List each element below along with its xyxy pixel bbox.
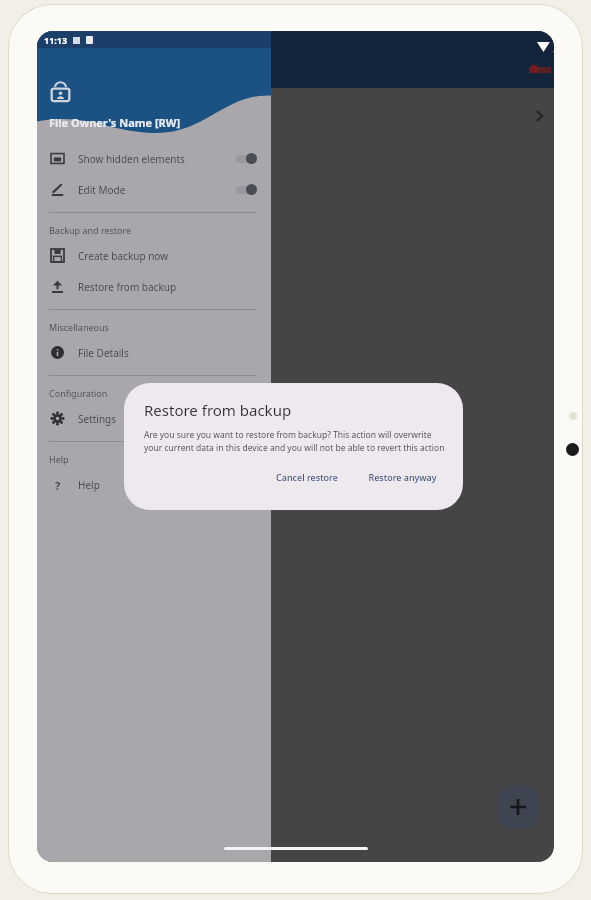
staticText: 11:13 xyxy=(44,34,68,46)
staticText: Help xyxy=(49,453,69,465)
staticText: Backup and restore xyxy=(49,224,132,236)
button[interactable]: Create backup now xyxy=(37,240,271,271)
button[interactable]: Add xyxy=(497,786,539,828)
button[interactable]: Restore anyway xyxy=(360,467,445,487)
other: Expand xyxy=(533,109,547,123)
staticText: Create backup now xyxy=(78,249,169,263)
staticText: Show hidden elements xyxy=(78,152,236,166)
staticText: Help xyxy=(78,478,100,492)
staticText: Restore from backup xyxy=(144,400,292,420)
staticText: Restore from backup xyxy=(78,280,177,294)
staticText: Settings xyxy=(78,412,117,426)
button[interactable]: Cancel restore xyxy=(268,467,346,487)
staticText: ? xyxy=(55,478,61,491)
staticText: Cancel restore xyxy=(276,471,338,483)
staticText: File Owner's Name [RW] xyxy=(49,115,181,130)
button[interactable]: File Details xyxy=(37,337,271,368)
staticText: Restore anyway xyxy=(368,471,437,483)
staticText: Configuration xyxy=(49,387,108,399)
button[interactable]: ? xyxy=(37,469,271,500)
button[interactable]: Edit Mode xyxy=(37,174,271,205)
staticText: Edit Mode xyxy=(78,183,236,197)
staticText: File Details xyxy=(78,346,129,360)
button[interactable]: Settings xyxy=(37,403,271,434)
button[interactable]: Show hidden elements xyxy=(37,143,271,174)
button[interactable]: Restore from backup xyxy=(37,271,271,302)
staticText: Miscellaneous xyxy=(49,321,109,333)
staticText: Are you sure you want to restore from ba… xyxy=(144,429,445,454)
